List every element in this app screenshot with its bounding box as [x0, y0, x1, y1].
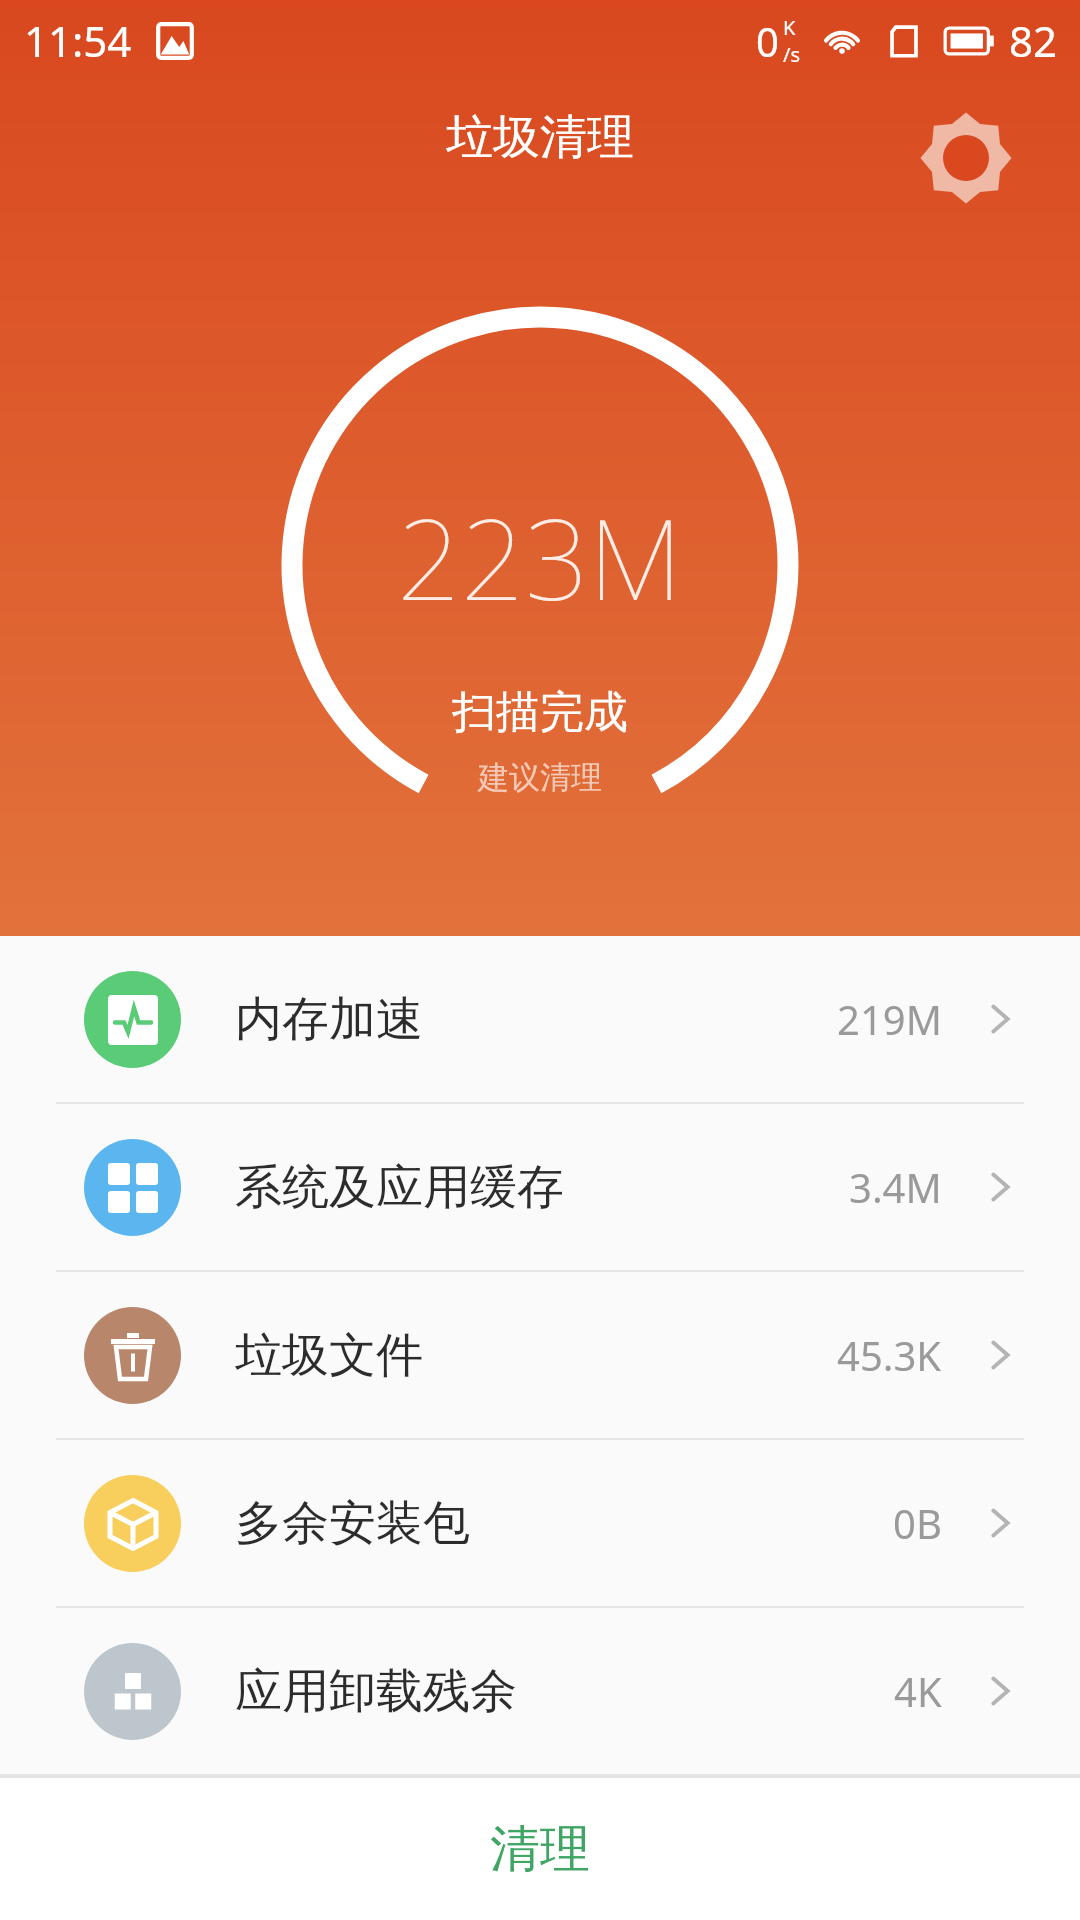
staticText: 223M	[397, 480, 683, 633]
staticText: 系统及应用缓存	[235, 1158, 564, 1217]
button[interactable]: 多余安装包	[0, 1440, 1080, 1606]
staticText: 垃圾文件	[235, 1326, 423, 1385]
button[interactable]: 系统及应用缓存	[0, 1104, 1080, 1270]
staticText: 内存加速	[235, 990, 423, 1049]
staticText: 82	[1009, 12, 1058, 69]
button[interactable]: 垃圾文件	[0, 1272, 1080, 1438]
staticText: 垃圾清理	[446, 108, 634, 167]
staticText: 扫描完成	[452, 685, 628, 740]
staticText: 0B	[893, 1496, 942, 1550]
staticText: 11:54	[24, 12, 132, 69]
staticText: 45.3K	[837, 1328, 942, 1382]
button[interactable]: 清理	[0, 1778, 1080, 1920]
staticText: 清理	[490, 1818, 590, 1881]
button[interactable]: Settings	[920, 112, 1012, 204]
staticText: K	[783, 14, 796, 41]
staticText: 应用卸载残余	[235, 1662, 517, 1721]
staticText: /s	[783, 41, 801, 68]
staticText: 219M	[837, 992, 942, 1046]
staticText: 建议清理	[478, 758, 602, 797]
button[interactable]: 内存加速	[0, 936, 1080, 1102]
staticText: 4K	[894, 1664, 942, 1718]
staticText: 多余安装包	[235, 1494, 470, 1553]
staticText: 0	[756, 14, 779, 68]
button[interactable]: 应用卸载残余	[0, 1608, 1080, 1774]
staticText: 3.4M	[849, 1160, 942, 1214]
